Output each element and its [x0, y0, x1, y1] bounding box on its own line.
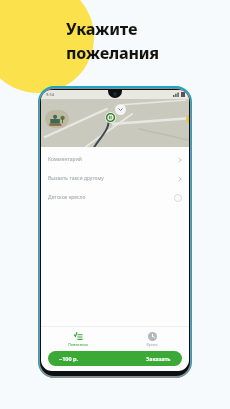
staticText: 9:54 [46, 92, 54, 97]
staticText: Пожелания [68, 342, 88, 347]
button[interactable]: Детское кресло [41, 188, 189, 207]
button[interactable]: Время [140, 330, 164, 349]
button[interactable]: Вызвать такси другому [41, 169, 189, 188]
staticText: Укажите [66, 18, 138, 40]
staticText: Детское кресло [48, 194, 174, 201]
button[interactable]: Pickup point [105, 112, 116, 123]
staticText: Комментарий [48, 156, 178, 163]
staticText: Время [146, 342, 158, 347]
staticText: пожелания [66, 42, 159, 64]
button[interactable]: Пожелания [62, 330, 94, 349]
button[interactable]: Комментарий [41, 150, 189, 169]
button[interactable]: ~100 р. [48, 351, 182, 366]
staticText: ~100 р. [59, 355, 78, 362]
staticText: Заказать [146, 355, 171, 362]
staticText: Вызвать такси другому [48, 175, 178, 182]
button[interactable]: Collapse [115, 104, 126, 115]
